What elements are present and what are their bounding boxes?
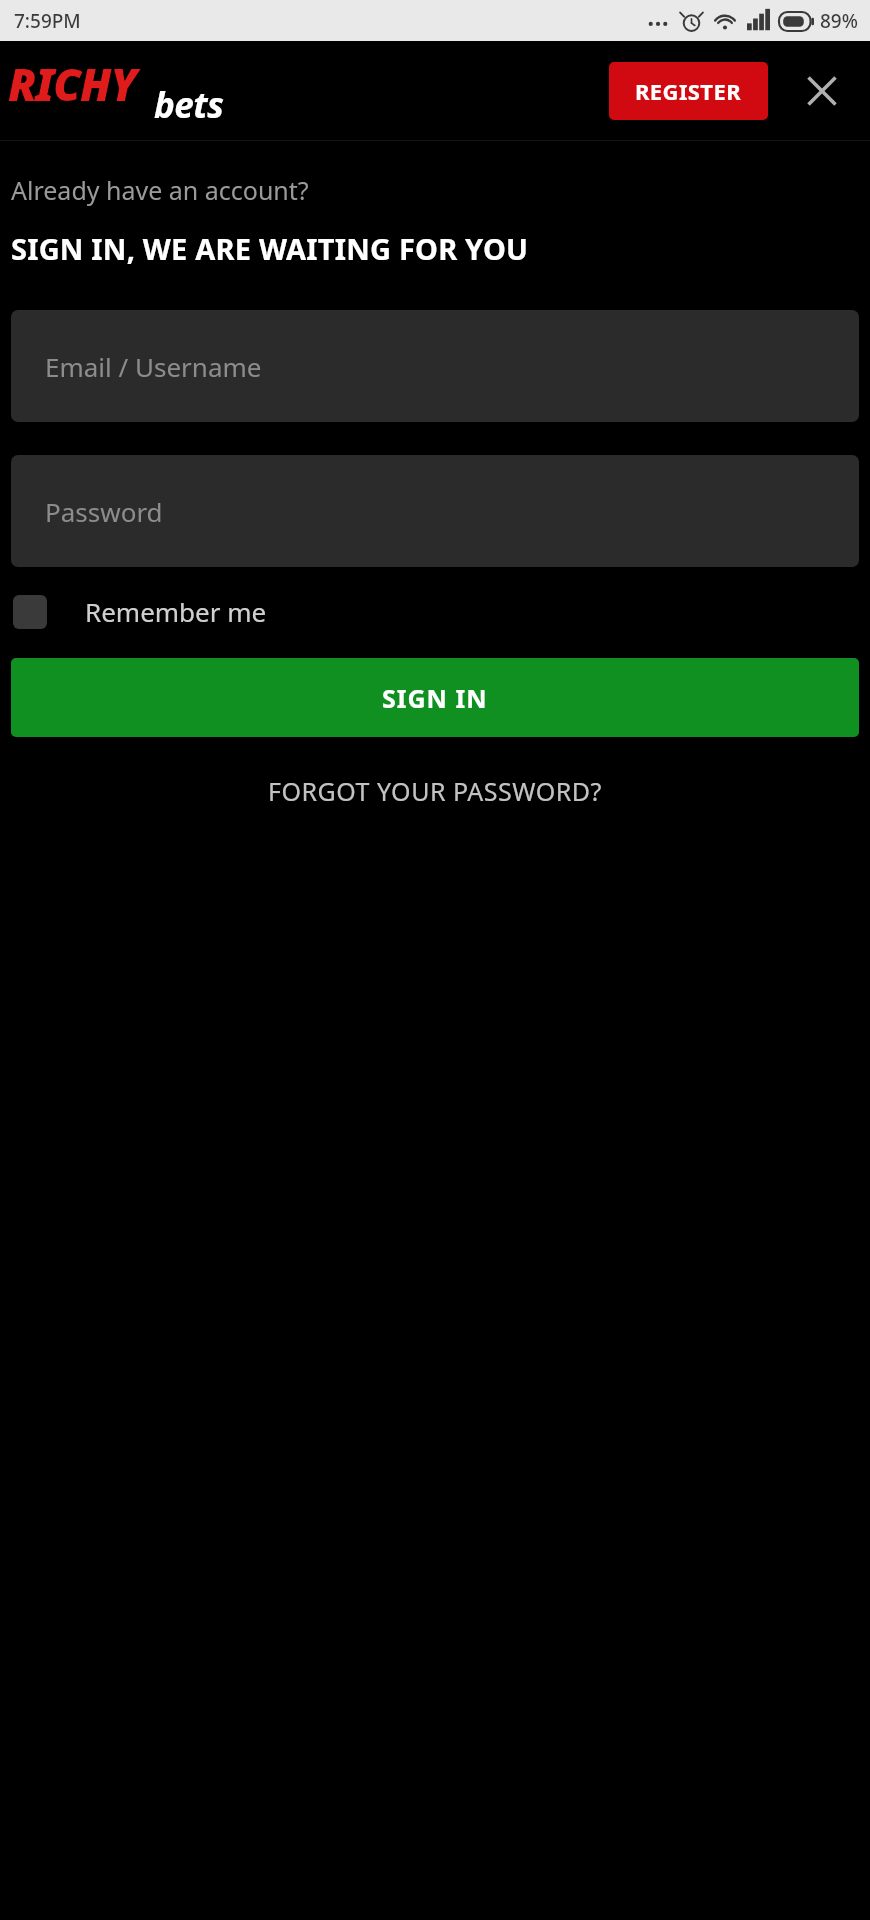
button[interactable]: Password: [11, 455, 859, 567]
staticText: 7:59PM: [14, 8, 81, 34]
button[interactable]: REGISTER: [609, 62, 768, 120]
staticText: Email / Username: [45, 349, 262, 384]
button[interactable]: SIGN IN: [11, 658, 859, 737]
staticText: Password: [45, 494, 163, 529]
staticText: RICHY: [8, 54, 137, 114]
staticText: REGISTER: [635, 76, 742, 106]
button[interactable]: FORGOT YOUR PASSWORD?: [11, 762, 859, 820]
button[interactable]: Remember me: [11, 588, 269, 635]
button[interactable]: Close: [794, 63, 850, 119]
button[interactable]: Email / Username: [11, 310, 859, 422]
button[interactable]: RICHY: [6, 52, 230, 130]
staticText: SIGN IN, WE ARE WAITING FOR YOU: [11, 229, 529, 268]
staticText: SIGN IN: [382, 681, 488, 715]
staticText: 89%: [820, 8, 858, 34]
staticText: bets: [154, 81, 224, 129]
staticText: FORGOT YOUR PASSWORD?: [268, 774, 602, 808]
staticText: Already have an account?: [11, 173, 309, 207]
staticText: Remember me: [85, 594, 267, 629]
